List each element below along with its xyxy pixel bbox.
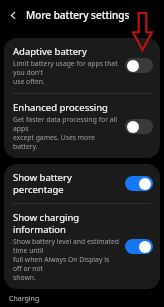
button[interactable]: Adaptive battery [4,38,160,93]
button[interactable]: Show charging information [4,204,160,289]
staticText: Limit battery usage for apps that you do… [13,59,119,86]
button[interactable]: Show battery percentage [4,164,160,203]
staticText: Charging [9,294,40,304]
button[interactable]: Enhanced processing [4,94,160,158]
button[interactable]: Show charging information [125,239,153,254]
staticText: More battery settings [26,8,130,22]
button[interactable]: Adaptive battery [125,58,153,73]
staticText: Show charging information [13,211,119,236]
staticText: Adaptive battery [13,45,87,58]
staticText: Enhanced processing [13,101,108,114]
button[interactable]: Back [0,2,26,28]
button[interactable]: Enhanced processing [125,119,153,134]
button[interactable]: Show battery percentage [125,176,153,191]
staticText: Show battery level and estimated time un… [13,237,119,282]
staticText: Get faster data processing for all apps … [13,115,119,151]
staticText: Show battery percentage [13,171,119,196]
